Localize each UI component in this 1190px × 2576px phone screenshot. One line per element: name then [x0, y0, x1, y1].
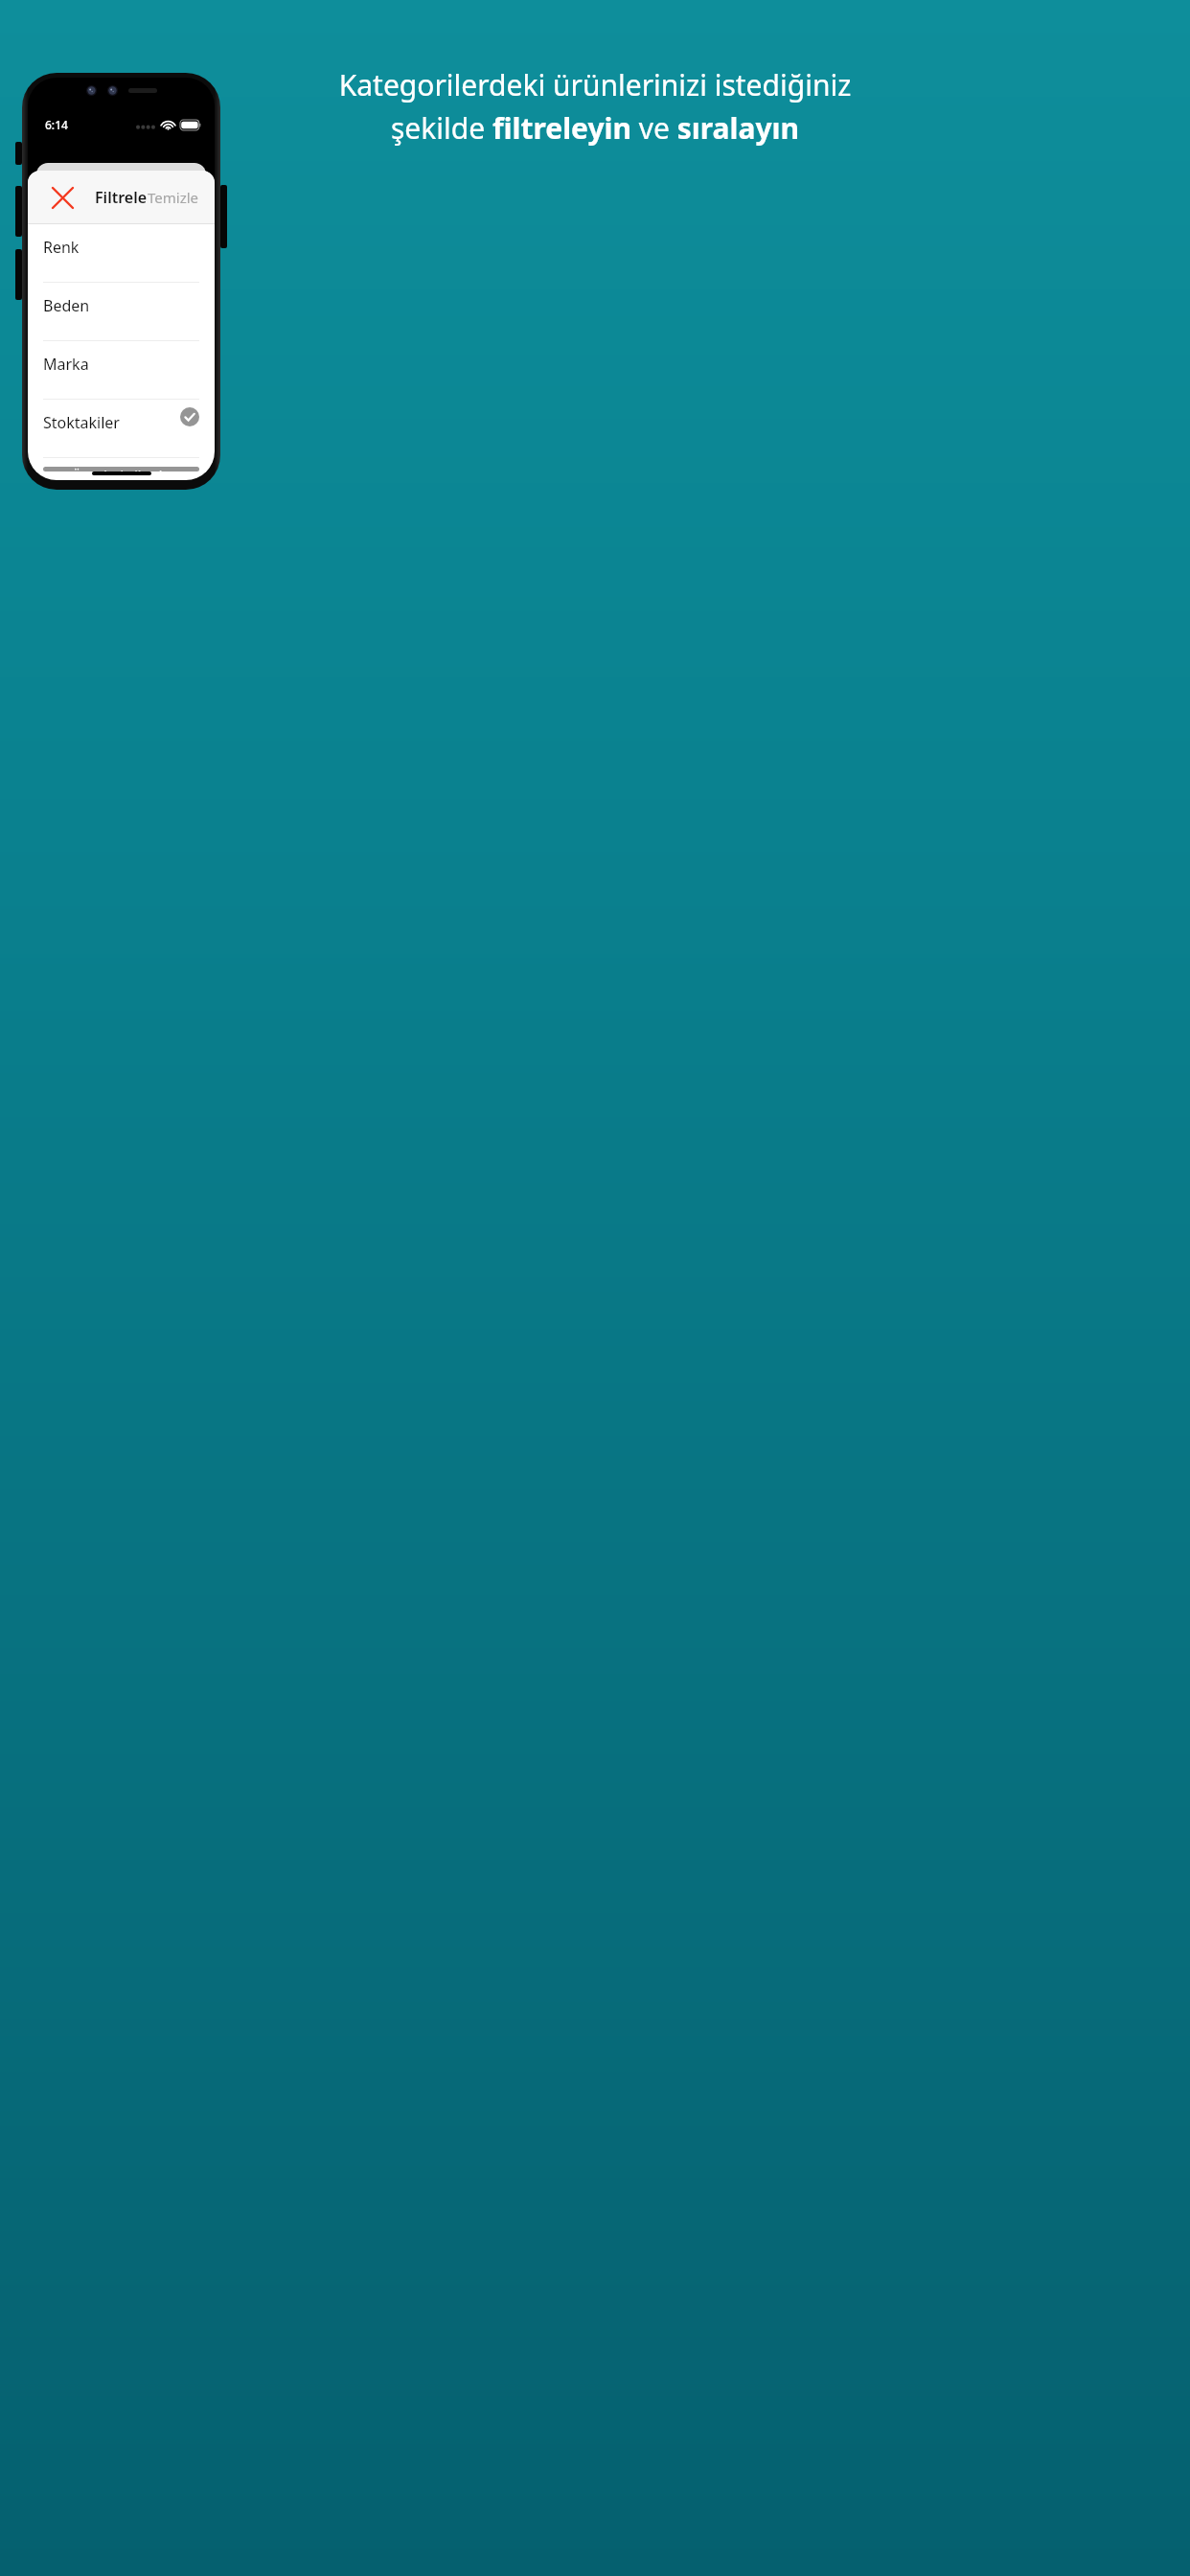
button[interactable]: Stoktakiler — [28, 400, 215, 458]
staticText: Stoktakiler — [43, 412, 120, 433]
button[interactable]: Ürünleri Filtrele — [43, 467, 199, 471]
button[interactable]: Marka — [28, 341, 215, 400]
staticText: Temizle — [148, 188, 199, 207]
staticText: Kategorilerdeki ürünlerinizi istediğiniz… — [25, 65, 1165, 148]
staticText: Beden — [43, 295, 90, 316]
button[interactable]: Renk — [28, 224, 215, 283]
staticText: Renk — [43, 237, 80, 258]
staticText: Filtrele — [95, 187, 148, 208]
button[interactable]: Kapat — [43, 178, 81, 217]
button[interactable]: Temizle — [132, 178, 215, 217]
staticText: 6:14 — [45, 117, 68, 132]
staticText: Ürünleri Filtrele — [72, 467, 171, 471]
staticText: Marka — [43, 354, 89, 375]
button[interactable]: Beden — [28, 283, 215, 341]
